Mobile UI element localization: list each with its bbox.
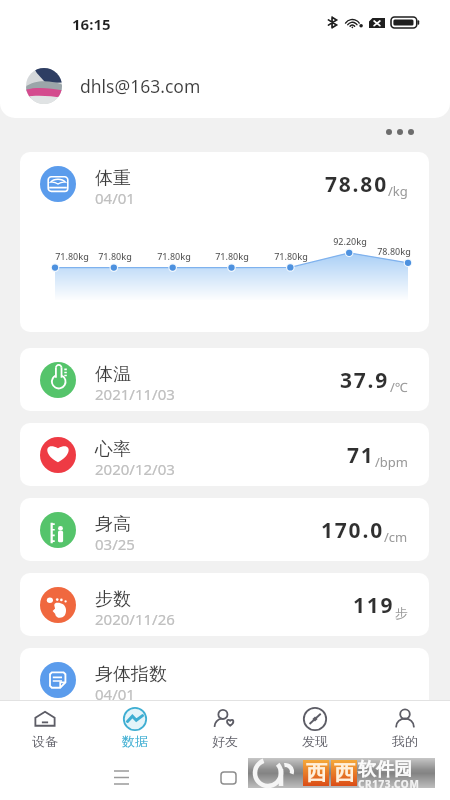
staticText: 体温 xyxy=(95,363,131,386)
staticText: 04/01 xyxy=(95,188,135,208)
staticText: 心率 xyxy=(95,438,131,461)
staticText: 身高 xyxy=(95,513,131,536)
button[interactable]: 体重 xyxy=(20,152,429,332)
staticText: 数据 xyxy=(122,733,148,749)
button[interactable]: 身高 xyxy=(20,498,429,561)
button[interactable]: 我的 xyxy=(360,700,450,748)
staticText: 16:15 xyxy=(72,14,111,34)
staticText: 设备 xyxy=(32,733,58,749)
staticText: 西 xyxy=(334,760,355,786)
staticText: /℃ xyxy=(390,378,408,396)
button[interactable]: 数据 xyxy=(90,700,180,748)
staticText: 身体指数 xyxy=(95,663,167,686)
staticText: 体重 xyxy=(95,167,131,190)
staticText: 71.80kg xyxy=(91,250,139,262)
button[interactable]: 心率 xyxy=(20,423,429,486)
staticText: 71.80kg xyxy=(208,250,256,262)
staticText: 03/25 xyxy=(95,534,135,554)
staticText: 2020/11/26 xyxy=(95,609,175,629)
staticText: 78.80kg xyxy=(370,245,418,257)
button[interactable]: 好友 xyxy=(180,700,270,748)
staticText: 37.9 xyxy=(340,366,390,395)
button[interactable]: dhls@163.com xyxy=(26,68,201,104)
staticText: 好友 xyxy=(212,733,238,749)
button[interactable]: Recent apps xyxy=(99,762,144,794)
button[interactable]: 发现 xyxy=(270,700,360,748)
staticText: 78.80 xyxy=(325,170,388,199)
staticText: 我的 xyxy=(392,733,418,749)
button[interactable]: 体温 xyxy=(20,348,429,411)
staticText: 71.80kg xyxy=(150,250,198,262)
staticText: /bpm xyxy=(375,453,408,471)
staticText: 71.80kg xyxy=(48,250,96,262)
staticText: 步 xyxy=(395,605,408,621)
staticText: 2020/12/03 xyxy=(95,459,175,479)
staticText: dhls@163.com xyxy=(80,74,201,98)
button[interactable]: Home xyxy=(206,762,251,794)
staticText: 软件园 xyxy=(358,758,412,781)
staticText: 步数 xyxy=(95,588,131,611)
staticText: 2021/11/03 xyxy=(95,384,175,404)
staticText: 71.80kg xyxy=(267,250,315,262)
staticText: 发现 xyxy=(302,733,328,749)
button[interactable]: More options xyxy=(386,127,414,137)
staticText: CR173.COM xyxy=(358,777,420,791)
staticText: 西 xyxy=(306,760,327,786)
button[interactable]: 身体指数 xyxy=(20,648,429,711)
staticText: /cm xyxy=(384,528,408,546)
button[interactable]: 设备 xyxy=(0,700,90,748)
staticText: 170.0 xyxy=(321,516,384,545)
button[interactable]: 步数 xyxy=(20,573,429,636)
staticText: 71 xyxy=(347,441,375,470)
staticText: /kg xyxy=(388,182,408,200)
staticText: 119 xyxy=(353,591,395,620)
staticText: 04/01 xyxy=(95,684,135,704)
staticText: 92.20kg xyxy=(326,235,374,247)
